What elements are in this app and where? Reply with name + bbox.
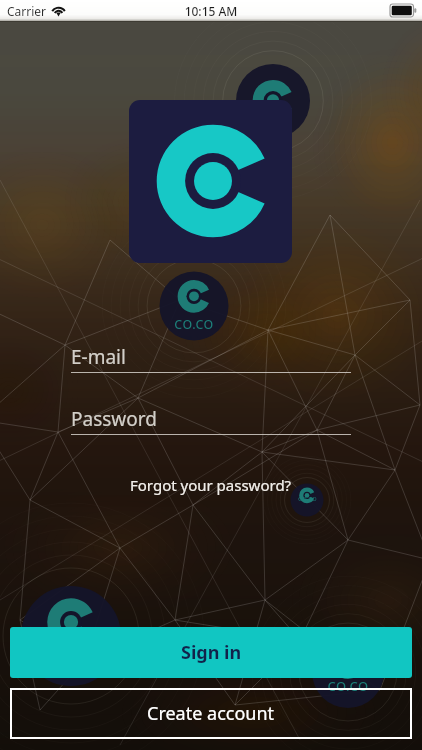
staticText: Carrier bbox=[7, 3, 47, 19]
staticText: CO.CO bbox=[174, 316, 214, 333]
staticText: CO.CO bbox=[298, 495, 317, 503]
staticText: Create account bbox=[147, 701, 275, 726]
button[interactable]: Sign in bbox=[10, 627, 412, 678]
button[interactable]: Forgot your password? bbox=[0, 472, 422, 498]
staticText: E-mail bbox=[71, 344, 126, 370]
staticText: Forgot your password? bbox=[130, 475, 292, 495]
staticText: 10:15 AM bbox=[0, 3, 422, 19]
button[interactable]: Create account bbox=[10, 688, 412, 739]
staticText: Sign in bbox=[181, 640, 242, 665]
staticText: Password bbox=[71, 406, 157, 432]
staticText: CO.CO bbox=[327, 677, 369, 695]
